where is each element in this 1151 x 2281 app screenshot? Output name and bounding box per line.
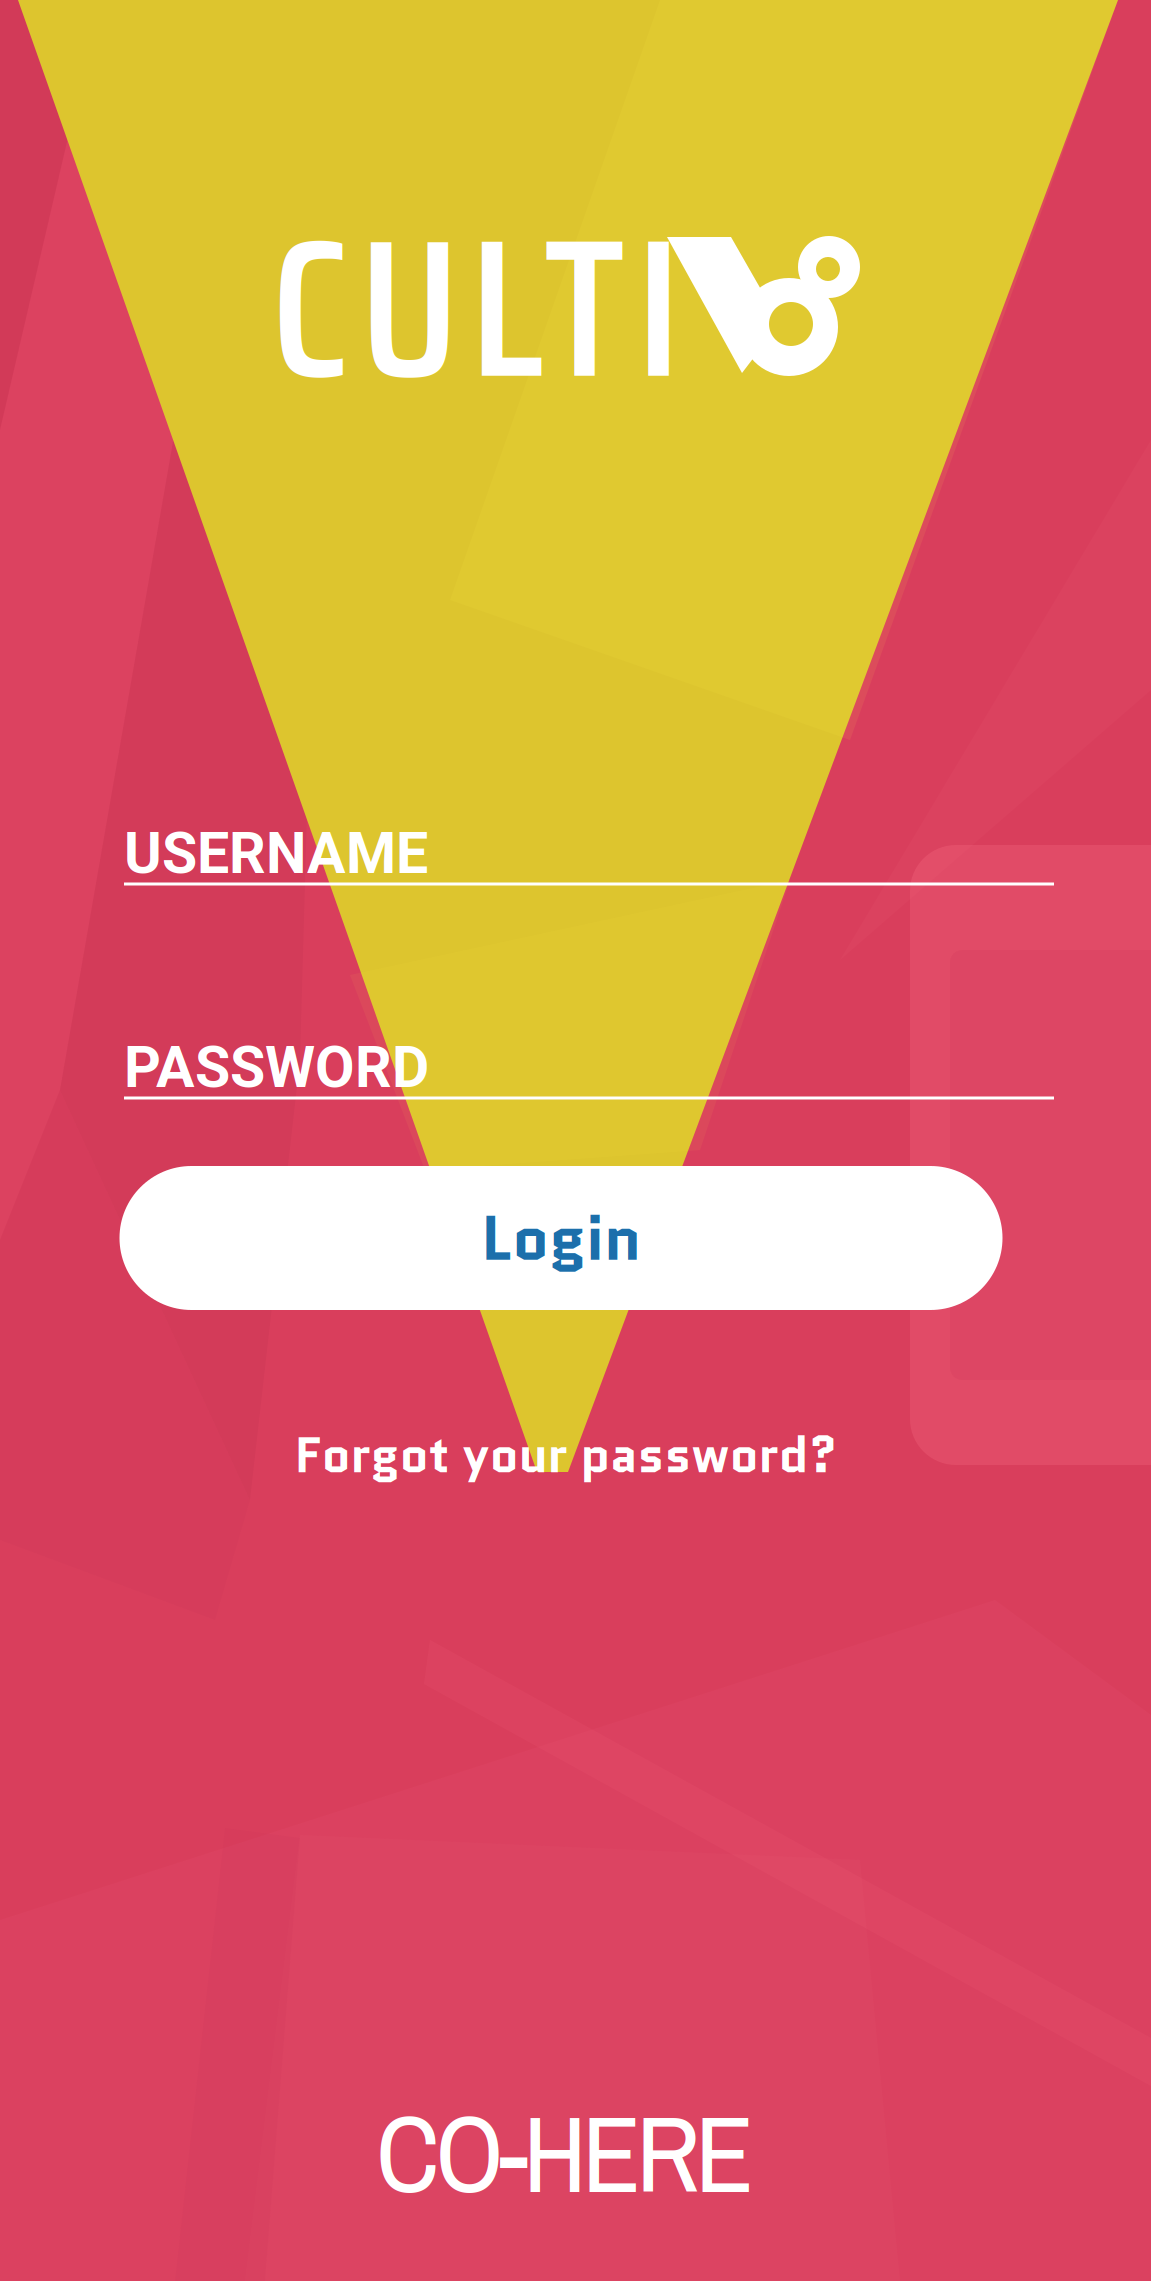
- button[interactable]: Forgot your password?: [216, 1415, 916, 1495]
- button[interactable]: PASSWORD: [124, 1038, 1054, 1099]
- button[interactable]: USERNAME: [124, 824, 1054, 885]
- staticText: PASSWORD: [124, 1034, 429, 1101]
- button[interactable]: Login: [119, 1166, 1002, 1310]
- staticText: Login: [481, 1193, 641, 1283]
- staticText: USERNAME: [124, 820, 428, 887]
- staticText: CO-HERE: [376, 2080, 754, 2226]
- staticText: Forgot your password?: [294, 1420, 837, 1490]
- staticText: CULTI: [271, 155, 681, 461]
